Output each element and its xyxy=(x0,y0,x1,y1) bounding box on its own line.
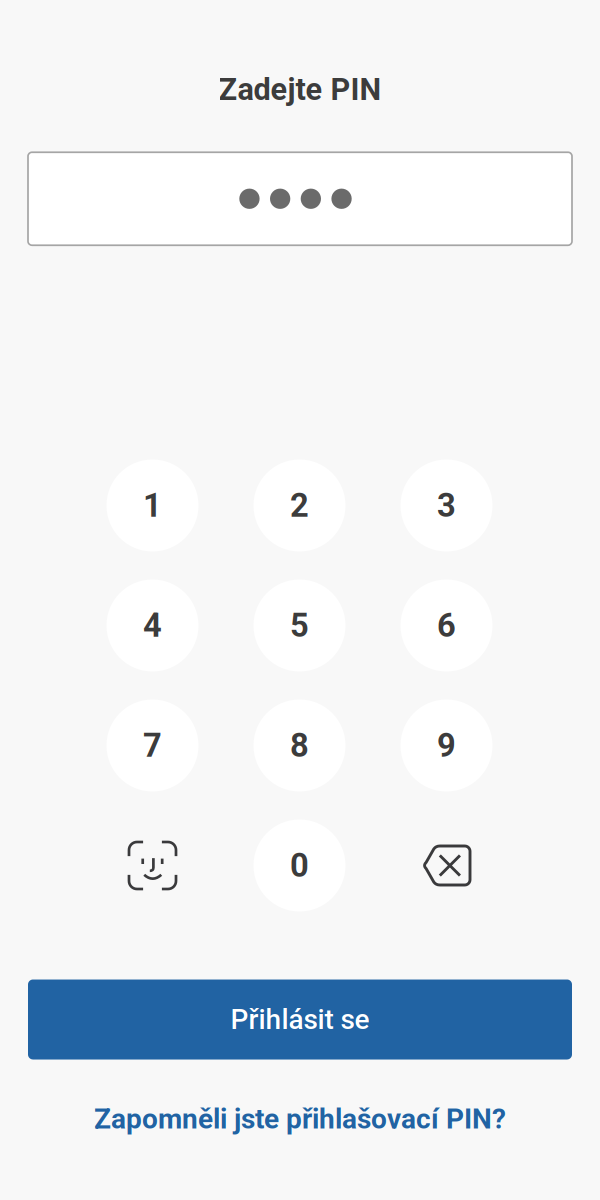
button[interactable]: Přihlásit pomocí Face ID xyxy=(106,819,198,911)
staticText: 6 xyxy=(437,606,456,645)
staticText: 2 xyxy=(290,486,309,525)
staticText: 4 xyxy=(143,606,162,645)
button[interactable]: 1 xyxy=(106,459,198,551)
button[interactable]: 4 xyxy=(106,579,198,671)
button[interactable]: Smazat xyxy=(400,819,492,911)
staticText: 8 xyxy=(290,726,309,765)
button[interactable]: 2 xyxy=(253,459,345,551)
button[interactable]: Přihlásit se xyxy=(28,979,572,1059)
button[interactable]: 8 xyxy=(253,699,345,791)
staticText: Přihlásit se xyxy=(230,1003,369,1036)
button[interactable]: 7 xyxy=(106,699,198,791)
staticText: 9 xyxy=(437,726,456,765)
button[interactable]: 9 xyxy=(400,699,492,791)
button[interactable]: 5 xyxy=(253,579,345,671)
button[interactable]: 3 xyxy=(400,459,492,551)
staticText: 0 xyxy=(290,846,309,885)
staticText: 3 xyxy=(437,486,456,525)
staticText: Zadejte PIN xyxy=(218,71,381,107)
button[interactable]: 6 xyxy=(400,579,492,671)
staticText: Zapomněli jste přihlašovací PIN? xyxy=(94,1103,506,1135)
button[interactable]: 0 xyxy=(253,819,345,911)
staticText: 1 xyxy=(143,486,162,525)
staticText: 7 xyxy=(143,726,162,765)
button[interactable]: Zapomněli jste přihlašovací PIN? xyxy=(94,1102,506,1136)
staticText: 5 xyxy=(290,606,309,645)
